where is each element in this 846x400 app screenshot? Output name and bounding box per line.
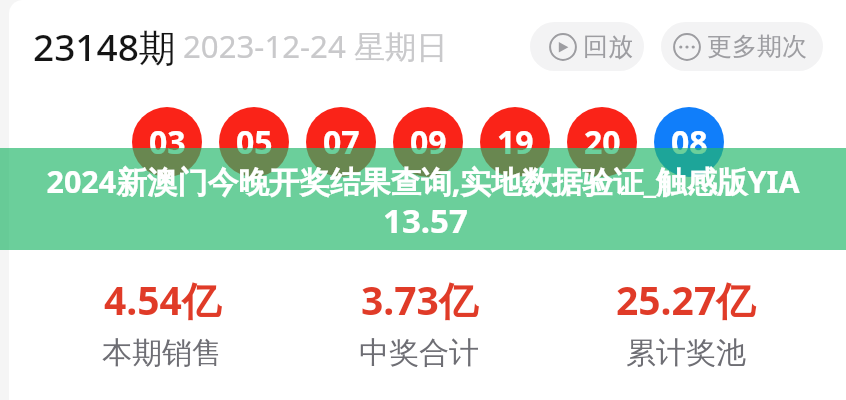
staticText: 4.54亿 bbox=[104, 273, 221, 326]
staticText: 2023-12-24 星期日 bbox=[183, 25, 448, 68]
staticText: 20 bbox=[584, 120, 621, 164]
staticText: 09 bbox=[410, 120, 447, 164]
button[interactable]: Number 20 bbox=[567, 107, 637, 177]
button[interactable]: Number 08 bbox=[654, 107, 724, 177]
staticText: 03 bbox=[149, 120, 186, 164]
staticText: 07 bbox=[323, 120, 360, 164]
button[interactable]: 4.54亿 bbox=[32, 273, 292, 372]
staticText: 13.57 bbox=[383, 198, 468, 243]
staticText: 3.73亿 bbox=[361, 273, 478, 326]
button[interactable]: Number 03 bbox=[132, 107, 202, 177]
button[interactable]: 3.73亿 bbox=[289, 273, 549, 372]
staticText: 23148期 bbox=[33, 21, 176, 72]
button[interactable]: Number 05 bbox=[219, 107, 289, 177]
other: More draws bbox=[673, 33, 701, 61]
staticText: 08 bbox=[671, 120, 708, 164]
staticText: 2024新澳门今晚开奖结果查询,实地数据验证_触感版YIA bbox=[46, 160, 800, 202]
staticText: 中奖合计 bbox=[359, 334, 479, 372]
button[interactable]: Number 07 bbox=[306, 107, 376, 177]
other: Replay bbox=[549, 33, 577, 61]
button[interactable]: Number 09 bbox=[393, 107, 463, 177]
staticText: 19 bbox=[497, 120, 534, 164]
button[interactable]: 25.27亿 bbox=[556, 273, 816, 372]
staticText: 25.27亿 bbox=[616, 273, 756, 326]
staticText: 累计奖池 bbox=[626, 334, 746, 372]
button[interactable]: Number 19 bbox=[480, 107, 550, 177]
staticText: 回放 bbox=[583, 31, 633, 62]
button[interactable]: Replay bbox=[530, 22, 644, 71]
staticText: 05 bbox=[236, 120, 273, 164]
button[interactable]: More draws bbox=[661, 22, 823, 71]
staticText: 本期销售 bbox=[102, 334, 222, 372]
staticText: 更多期次 bbox=[707, 31, 807, 62]
